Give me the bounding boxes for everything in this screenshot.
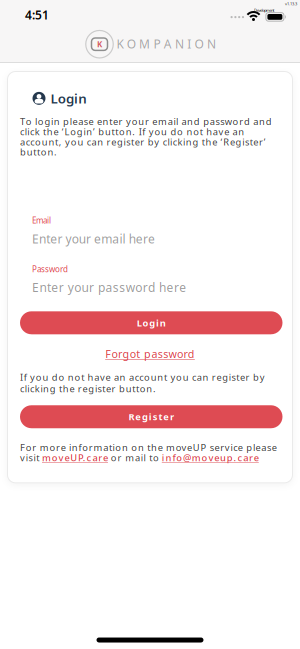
staticText: For more information on the moveUP servi… <box>20 441 277 454</box>
staticText: Login <box>137 317 166 329</box>
staticText: Development <box>254 7 274 13</box>
staticText: Password <box>32 264 68 274</box>
staticText: K <box>97 39 102 49</box>
staticText: account, you can register by clicking th… <box>20 136 266 148</box>
staticText: Register <box>128 411 174 423</box>
staticText: clicking the register button. <box>20 382 156 395</box>
staticText: To login please enter your email and pas… <box>20 115 272 128</box>
button[interactable]: Forgot password <box>105 347 195 361</box>
button[interactable]: Enter your password here <box>32 279 292 295</box>
button[interactable]: info@moveup.care <box>162 451 259 464</box>
staticText: v1.13.3 <box>285 1 297 6</box>
staticText: Forgot password <box>105 347 195 361</box>
staticText: 4:51 <box>25 7 49 23</box>
staticText: If you do not have an account you can re… <box>20 371 265 383</box>
staticText: Login <box>50 89 87 107</box>
staticText: or mail to <box>108 451 162 464</box>
staticText: click the ‘Login’ button. If you do not … <box>20 125 244 138</box>
staticText: Email <box>32 215 51 226</box>
staticText: moveUP.care <box>42 451 108 464</box>
button[interactable]: moveUP.care <box>42 451 108 464</box>
staticText: Enter your email here <box>32 231 155 247</box>
button[interactable]: Login <box>20 311 282 334</box>
staticText: Enter your password here <box>32 279 186 295</box>
button[interactable]: Enter your email here <box>32 231 292 247</box>
staticText: info@moveup.care <box>162 451 259 464</box>
staticText: button. <box>20 146 57 158</box>
staticText: KOMPANION <box>116 36 216 52</box>
staticText: visit <box>20 451 42 464</box>
button[interactable]: Register <box>20 405 282 428</box>
